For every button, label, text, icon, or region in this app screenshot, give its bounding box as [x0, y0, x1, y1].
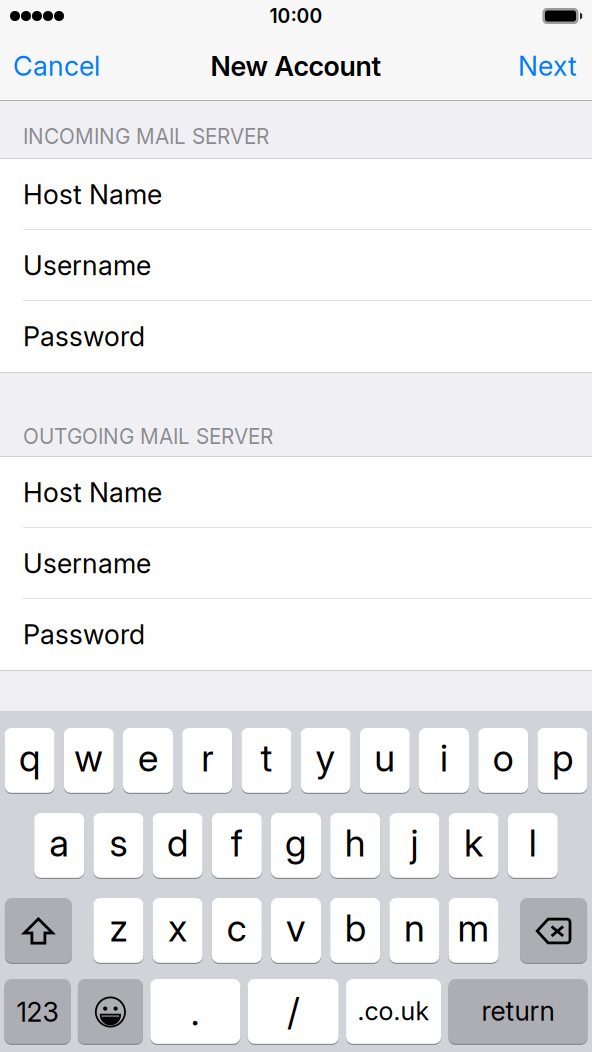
button[interactable]: Next	[504, 40, 592, 92]
staticText: m	[458, 905, 490, 951]
staticText: Next	[518, 50, 577, 82]
staticText: .	[191, 989, 200, 1035]
staticText: u	[374, 735, 395, 781]
staticText: Username	[23, 249, 151, 282]
button[interactable]: p	[537, 728, 587, 794]
button[interactable]: z	[93, 898, 143, 964]
staticText: x	[168, 905, 187, 951]
staticText: o	[493, 735, 514, 781]
staticText: i	[440, 735, 448, 781]
button[interactable]: c	[212, 898, 262, 964]
staticText: return	[481, 995, 554, 1027]
button[interactable]: r	[182, 728, 232, 794]
staticText: f	[231, 820, 243, 866]
staticText: p	[552, 735, 573, 781]
button[interactable]: b	[330, 898, 380, 964]
staticText: l	[529, 820, 537, 866]
staticText: OUTGOING MAIL SERVER	[23, 424, 273, 449]
staticText: INCOMING MAIL SERVER	[23, 124, 269, 149]
button[interactable]: k	[449, 813, 499, 879]
button[interactable]: Username	[0, 528, 592, 599]
staticText: e	[138, 735, 158, 781]
staticText: y	[316, 735, 336, 781]
button[interactable]: Cancel	[0, 40, 114, 92]
button[interactable]: o	[478, 728, 528, 794]
button[interactable]: h	[330, 813, 380, 879]
button[interactable]: 123	[4, 979, 70, 1045]
button[interactable]: .	[150, 979, 240, 1045]
staticText: g	[285, 820, 307, 866]
button[interactable]: s	[93, 813, 143, 879]
button[interactable]: y	[301, 728, 351, 794]
staticText: s	[109, 820, 127, 866]
button[interactable]: Username	[0, 230, 592, 301]
staticText: a	[49, 820, 69, 866]
button[interactable]: i	[419, 728, 469, 794]
staticText: Cancel	[13, 50, 100, 82]
button[interactable]: Password	[0, 301, 592, 372]
button[interactable]: t	[241, 728, 291, 794]
staticText: q	[19, 735, 40, 781]
staticText: 123	[16, 996, 58, 1028]
staticText: Host Name	[23, 476, 162, 509]
staticText: Password	[23, 320, 145, 353]
staticText: z	[109, 905, 127, 951]
button[interactable]: Password	[0, 599, 592, 670]
staticText: t	[260, 735, 272, 781]
button[interactable]: q	[5, 728, 55, 794]
staticText: New Account	[210, 49, 381, 82]
button[interactable]: Emoji	[78, 979, 143, 1045]
button[interactable]: g	[271, 813, 321, 879]
button[interactable]: Shift	[5, 898, 72, 964]
button[interactable]: w	[64, 728, 114, 794]
button[interactable]: x	[153, 898, 203, 964]
staticText: /	[287, 989, 299, 1035]
button[interactable]: f	[212, 813, 262, 879]
staticText: w	[74, 735, 103, 781]
button[interactable]: u	[360, 728, 410, 794]
button[interactable]: .co.uk	[346, 979, 441, 1045]
staticText: Username	[23, 547, 151, 580]
button[interactable]: l	[508, 813, 558, 879]
staticText: Password	[23, 618, 145, 651]
staticText: n	[404, 905, 425, 951]
staticText: j	[410, 820, 418, 866]
staticText: 10:00	[269, 4, 322, 28]
button[interactable]: Host Name	[0, 159, 592, 230]
button[interactable]: d	[153, 813, 203, 879]
staticText: r	[201, 735, 213, 781]
button[interactable]: n	[389, 898, 439, 964]
button[interactable]: Delete	[520, 898, 587, 964]
button[interactable]: j	[389, 813, 439, 879]
button[interactable]: a	[34, 813, 84, 879]
staticText: d	[167, 820, 188, 866]
button[interactable]: v	[271, 898, 321, 964]
button[interactable]: m	[449, 898, 499, 964]
button[interactable]: return	[448, 979, 587, 1045]
staticText: c	[227, 905, 247, 951]
staticText: b	[345, 905, 366, 951]
button[interactable]: Host Name	[0, 457, 592, 528]
staticText: v	[286, 905, 306, 951]
button[interactable]: /	[248, 979, 339, 1045]
staticText: h	[345, 820, 366, 866]
staticText: k	[464, 820, 483, 866]
staticText: .co.uk	[358, 996, 430, 1026]
button[interactable]: e	[123, 728, 173, 794]
staticText: Host Name	[23, 178, 162, 211]
